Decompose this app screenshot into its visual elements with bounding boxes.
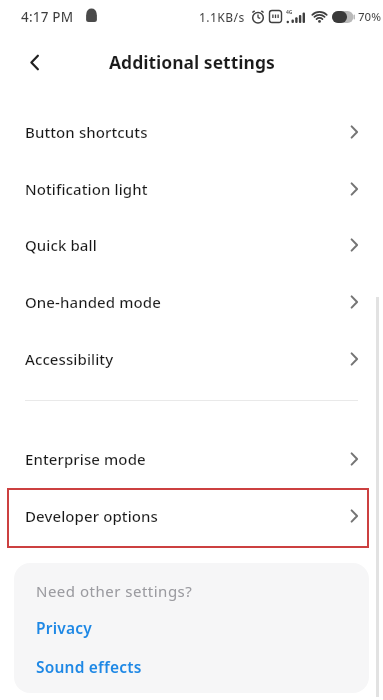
button[interactable]: Developer options [0,487,383,544]
staticText: Button shortcuts [25,122,148,142]
button[interactable]: Quick ball [0,216,383,273]
button[interactable]: Notification light [0,160,383,217]
staticText: 4G [286,9,293,16]
staticText: Enterprise mode [25,449,146,469]
button[interactable]: One-handed mode [0,273,383,330]
button[interactable]: Enterprise mode [0,430,383,487]
staticText: 4:17 PM [21,8,74,26]
button[interactable]: Sound effects [22,648,202,684]
button[interactable]: Accessibility [0,330,383,387]
staticText: Developer options [25,506,158,526]
staticText: Privacy [36,617,92,638]
staticText: 1.1KB/s [199,9,245,25]
staticText: Need other settings? [36,581,193,601]
staticText: Additional settings [109,50,275,74]
staticText: 70% [358,9,381,25]
staticText: Accessibility [25,349,114,369]
staticText: Sound effects [36,656,142,677]
staticText: Quick ball [25,235,97,255]
button[interactable] [18,47,50,77]
staticText: One-handed mode [25,292,161,312]
button[interactable]: Privacy [22,609,202,645]
button[interactable]: Button shortcuts [0,103,383,160]
staticText: Notification light [25,179,148,199]
